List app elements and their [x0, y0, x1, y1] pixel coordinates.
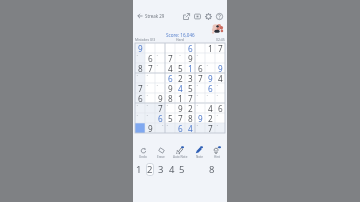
button[interactable] — [165, 103, 175, 113]
button[interactable]: Auto Note — [171, 144, 189, 159]
button[interactable] — [135, 103, 145, 113]
button[interactable] — [195, 93, 205, 103]
button[interactable]: 1 — [133, 162, 144, 177]
button[interactable]: 5 — [165, 113, 175, 123]
button[interactable]: 3 — [185, 73, 195, 83]
button[interactable]: 9 — [155, 93, 165, 103]
button[interactable] — [205, 63, 215, 73]
button[interactable]: 6 — [205, 83, 215, 93]
button[interactable] — [155, 73, 165, 83]
button[interactable]: 9 — [165, 83, 175, 93]
button[interactable] — [145, 93, 155, 103]
button[interactable] — [215, 113, 225, 123]
button[interactable] — [145, 43, 155, 53]
button[interactable] — [195, 103, 205, 113]
button[interactable]: 3 — [155, 162, 166, 177]
button[interactable]: 7 — [175, 113, 185, 123]
button[interactable]: 9 — [145, 123, 155, 133]
button[interactable]: 6 — [185, 43, 195, 53]
button[interactable] — [165, 123, 175, 133]
button[interactable] — [215, 83, 225, 93]
button[interactable]: 6 — [215, 103, 225, 113]
button[interactable]: 6 — [135, 93, 145, 103]
button[interactable]: 1 — [205, 43, 215, 53]
button[interactable]: 6 — [195, 63, 205, 73]
button[interactable] — [145, 113, 155, 123]
button[interactable]: 6 — [155, 113, 165, 123]
button[interactable] — [175, 43, 185, 53]
button[interactable]: 4 — [166, 162, 177, 177]
button[interactable] — [215, 93, 225, 103]
button[interactable]: 7 — [215, 43, 225, 53]
button[interactable] — [215, 53, 225, 63]
button[interactable]: Note — [190, 144, 208, 159]
button[interactable]: 9 — [135, 43, 145, 53]
button[interactable] — [145, 103, 155, 113]
button[interactable]: Share — [181, 11, 192, 21]
button[interactable]: 6 — [145, 53, 155, 63]
button[interactable]: 9 — [175, 103, 185, 113]
button[interactable] — [145, 73, 155, 83]
button[interactable]: 2 — [205, 113, 215, 123]
button[interactable]: 9 — [185, 53, 195, 63]
button[interactable]: 9 — [205, 73, 215, 83]
button[interactable]: 8 — [185, 113, 195, 123]
button[interactable] — [195, 43, 205, 53]
button[interactable] — [215, 123, 225, 133]
button[interactable]: 4 — [175, 83, 185, 93]
button[interactable] — [145, 83, 155, 93]
button[interactable]: 2 — [144, 162, 155, 177]
button[interactable] — [155, 123, 165, 133]
button[interactable]: 6 — [175, 123, 185, 133]
button[interactable] — [155, 53, 165, 63]
button[interactable]: 2 — [175, 73, 185, 83]
button[interactable]: Back — [135, 11, 144, 20]
button[interactable]: 4 — [185, 123, 195, 133]
button[interactable] — [135, 73, 145, 83]
button[interactable]: 5 — [175, 63, 185, 73]
button[interactable]: 7 — [155, 103, 165, 113]
button[interactable]: 6 — [165, 73, 175, 83]
button[interactable]: 5 — [177, 162, 187, 177]
button[interactable] — [195, 53, 205, 63]
button[interactable] — [135, 53, 145, 63]
button[interactable]: 4 — [165, 63, 175, 73]
button[interactable]: 4 — [205, 103, 215, 113]
button[interactable]: 8 — [207, 162, 217, 177]
button[interactable] — [135, 113, 145, 123]
button[interactable]: 5 — [185, 83, 195, 93]
button[interactable]: Settings — [203, 11, 214, 21]
button[interactable] — [195, 123, 205, 133]
button[interactable]: Help — [214, 11, 225, 21]
button[interactable]: 1 — [175, 93, 185, 103]
button[interactable] — [155, 43, 165, 53]
button[interactable]: Theme — [192, 11, 203, 21]
button[interactable]: 7 — [185, 93, 195, 103]
button[interactable]: 1 — [185, 63, 195, 73]
button[interactable]: 7 — [145, 63, 155, 73]
button[interactable] — [165, 43, 175, 53]
button[interactable] — [205, 53, 215, 63]
button[interactable] — [155, 63, 165, 73]
button[interactable]: 7 — [205, 123, 215, 133]
button[interactable]: 9 — [195, 113, 205, 123]
button[interactable] — [205, 93, 215, 103]
button[interactable]: 8 — [165, 93, 175, 103]
button[interactable]: 7 — [165, 53, 175, 63]
button[interactable]: 8 — [135, 63, 145, 73]
button[interactable]: 7 — [135, 83, 145, 93]
button[interactable] — [175, 53, 185, 63]
button[interactable]: 4 — [215, 73, 225, 83]
button[interactable]: 9 — [215, 63, 225, 73]
button[interactable]: 7 — [195, 73, 205, 83]
button[interactable] — [135, 123, 145, 133]
button[interactable]: 2 — [185, 103, 195, 113]
button[interactable]: Undo — [134, 144, 152, 159]
button[interactable]: Hint — [208, 144, 226, 159]
button[interactable] — [195, 83, 205, 93]
button[interactable]: Erase — [152, 144, 170, 159]
button[interactable] — [155, 83, 165, 93]
